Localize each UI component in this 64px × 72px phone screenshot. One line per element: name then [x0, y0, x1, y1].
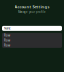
staticText: Row [4, 44, 10, 47]
staticText: Manage your profile [18, 10, 46, 14]
staticText: Name [4, 27, 11, 30]
staticText: Row [4, 34, 10, 37]
staticText: Account Settings [14, 4, 49, 9]
staticText: Row [4, 39, 10, 42]
